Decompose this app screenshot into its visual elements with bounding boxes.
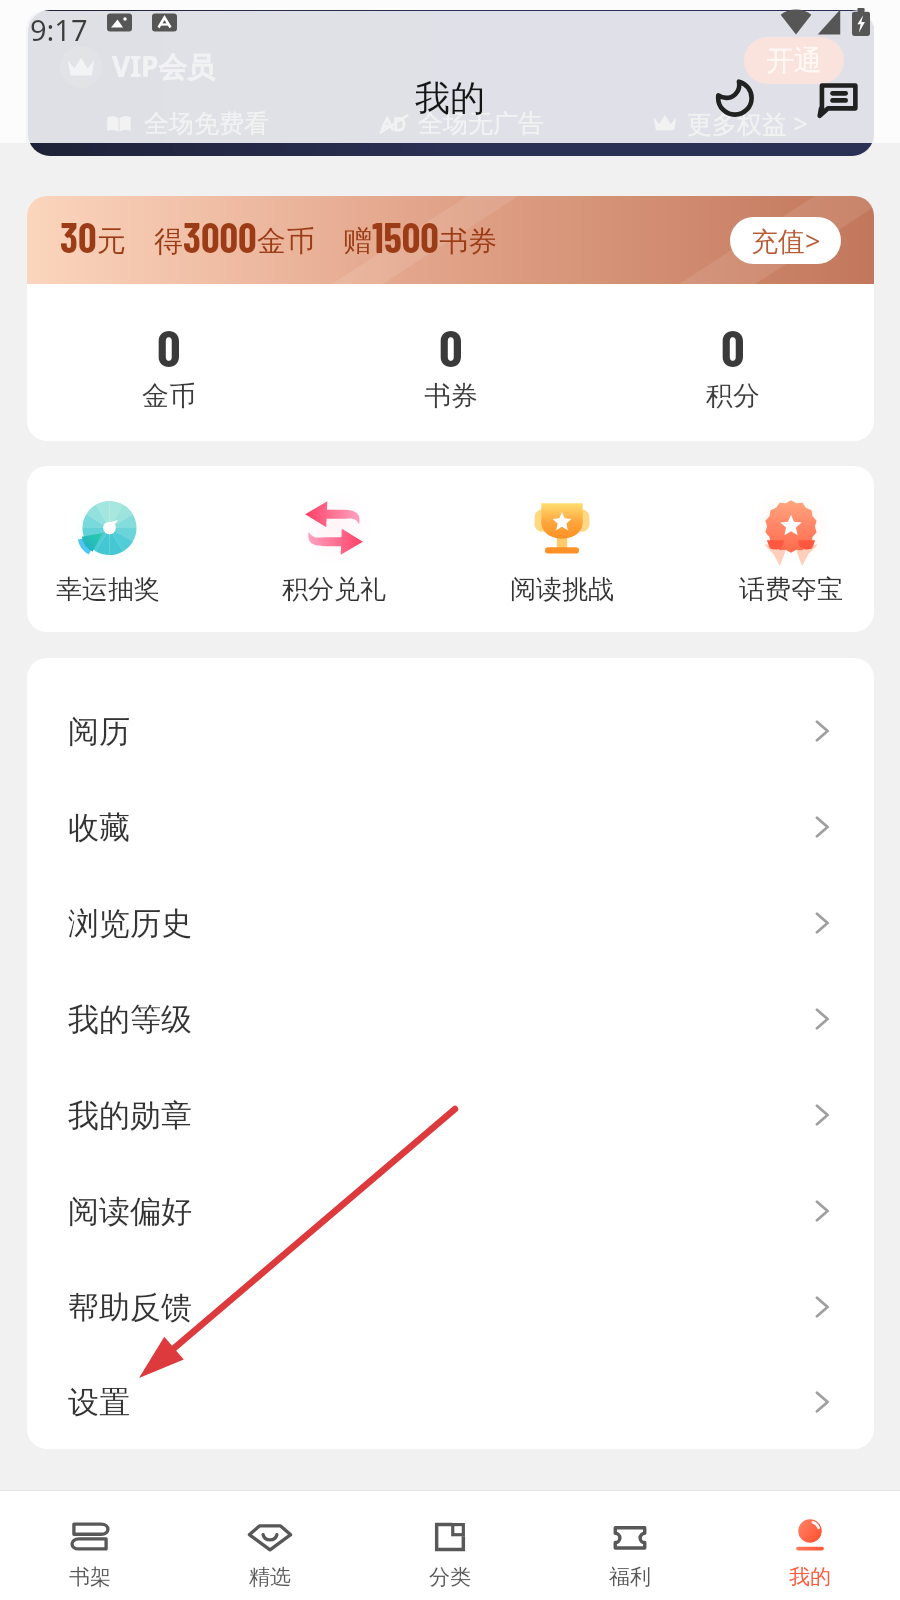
- staticText: 精选: [249, 1564, 291, 1590]
- staticText: 幸运抽奖: [56, 573, 160, 606]
- staticText: 书券: [424, 379, 478, 413]
- staticText: 阅读挑战: [510, 573, 614, 606]
- button[interactable]: 收藏: [27, 779, 874, 875]
- staticText: 全场免费看: [144, 108, 269, 139]
- button[interactable]: 30: [27, 196, 874, 284]
- button[interactable]: 分类: [360, 1491, 540, 1600]
- staticText: 0: [721, 315, 745, 377]
- staticText: 阅读偏好: [68, 1192, 192, 1231]
- staticText: 0: [439, 315, 463, 377]
- button[interactable]: 书架: [0, 1491, 180, 1600]
- button[interactable]: 精选: [180, 1491, 360, 1600]
- staticText: 我的勋章: [68, 1096, 192, 1135]
- staticText: 9:17: [30, 10, 88, 49]
- staticText: 浏览历史: [68, 904, 192, 943]
- button[interactable]: 我的: [720, 1491, 900, 1600]
- button[interactable]: 幸运抽奖: [27, 466, 222, 632]
- staticText: 我的: [415, 76, 485, 120]
- staticText: 全场无广告: [418, 108, 543, 139]
- button[interactable]: VIP会员: [28, 10, 874, 156]
- button[interactable]: 积分兑礼: [220, 466, 448, 632]
- staticText: 元: [97, 223, 126, 260]
- staticText: 积分: [706, 379, 760, 413]
- button[interactable]: 阅历: [27, 683, 874, 779]
- button[interactable]: 阅读偏好: [27, 1163, 874, 1259]
- staticText: 帮助反馈: [68, 1288, 192, 1327]
- button[interactable]: 福利: [540, 1491, 720, 1600]
- staticText: 话费夺宝: [739, 573, 843, 606]
- button[interactable]: 0: [310, 284, 592, 441]
- staticText: 充值>: [751, 222, 821, 259]
- button[interactable]: 我的勋章: [27, 1067, 874, 1163]
- staticText: 得: [154, 223, 183, 260]
- staticText: 书券: [439, 223, 497, 260]
- staticText: 金币: [142, 379, 196, 413]
- button[interactable]: 0: [592, 284, 874, 441]
- staticText: 书架: [69, 1564, 111, 1590]
- staticText: 积分兑礼: [282, 573, 386, 606]
- staticText: 收藏: [68, 808, 130, 847]
- staticText: 1500: [372, 212, 439, 261]
- button[interactable]: 充值>: [730, 217, 841, 264]
- staticText: 开通: [766, 43, 822, 78]
- staticText: 福利: [609, 1564, 651, 1590]
- staticText: 30: [60, 212, 97, 261]
- staticText: 分类: [429, 1564, 471, 1590]
- staticText: VIP会员: [112, 47, 215, 85]
- staticText: 赠: [343, 223, 372, 260]
- button[interactable]: 阅读挑战: [448, 466, 676, 632]
- button[interactable]: Messages: [808, 68, 864, 124]
- staticText: 阅历: [68, 712, 130, 751]
- button[interactable]: 我的等级: [27, 971, 874, 1067]
- staticText: 3000: [183, 212, 257, 261]
- staticText: 我的等级: [68, 1000, 192, 1039]
- button[interactable]: Night mode: [707, 70, 761, 124]
- button[interactable]: 设置: [27, 1355, 874, 1449]
- button[interactable]: 话费夺宝: [677, 466, 874, 632]
- staticText: 我的: [789, 1564, 831, 1590]
- staticText: 金币: [257, 223, 315, 260]
- button[interactable]: 帮助反馈: [27, 1259, 874, 1355]
- staticText: 设置: [68, 1383, 130, 1422]
- staticText: 更多权益 >: [687, 106, 808, 140]
- staticText: 0: [157, 315, 181, 377]
- button[interactable]: 0: [27, 284, 310, 441]
- button[interactable]: 浏览历史: [27, 875, 874, 971]
- button[interactable]: 开通: [744, 37, 844, 84]
